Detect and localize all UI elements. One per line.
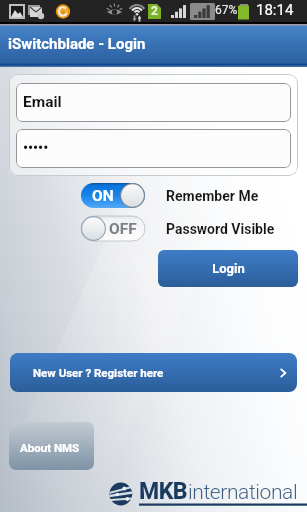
staticText: MKB: [139, 478, 188, 505]
button[interactable]: New User ? Register here: [10, 353, 297, 392]
staticText: Password Visible: [166, 221, 275, 237]
button[interactable]: Login: [158, 250, 298, 287]
button[interactable]: Password visible off: [81, 216, 145, 241]
button[interactable]: Email: [16, 83, 291, 122]
staticText: OFF: [109, 220, 137, 238]
staticText: 2: [151, 4, 158, 18]
staticText: New User ? Register here: [33, 366, 164, 379]
staticText: About NMS: [20, 441, 80, 454]
button[interactable]: •••••: [16, 129, 291, 168]
staticText: ON: [92, 187, 114, 205]
staticText: international: [188, 480, 298, 505]
staticText: Email: [23, 93, 62, 111]
staticText: •••••: [23, 140, 49, 156]
button[interactable]: About NMS: [9, 422, 94, 470]
button[interactable]: Remember me on: [81, 183, 145, 208]
staticText: iSwitchblade - Login: [8, 35, 146, 53]
staticText: Remember Me: [166, 188, 259, 204]
staticText: Login: [212, 261, 245, 276]
staticText: 67%: [215, 3, 238, 17]
staticText: 18:14: [256, 1, 294, 19]
